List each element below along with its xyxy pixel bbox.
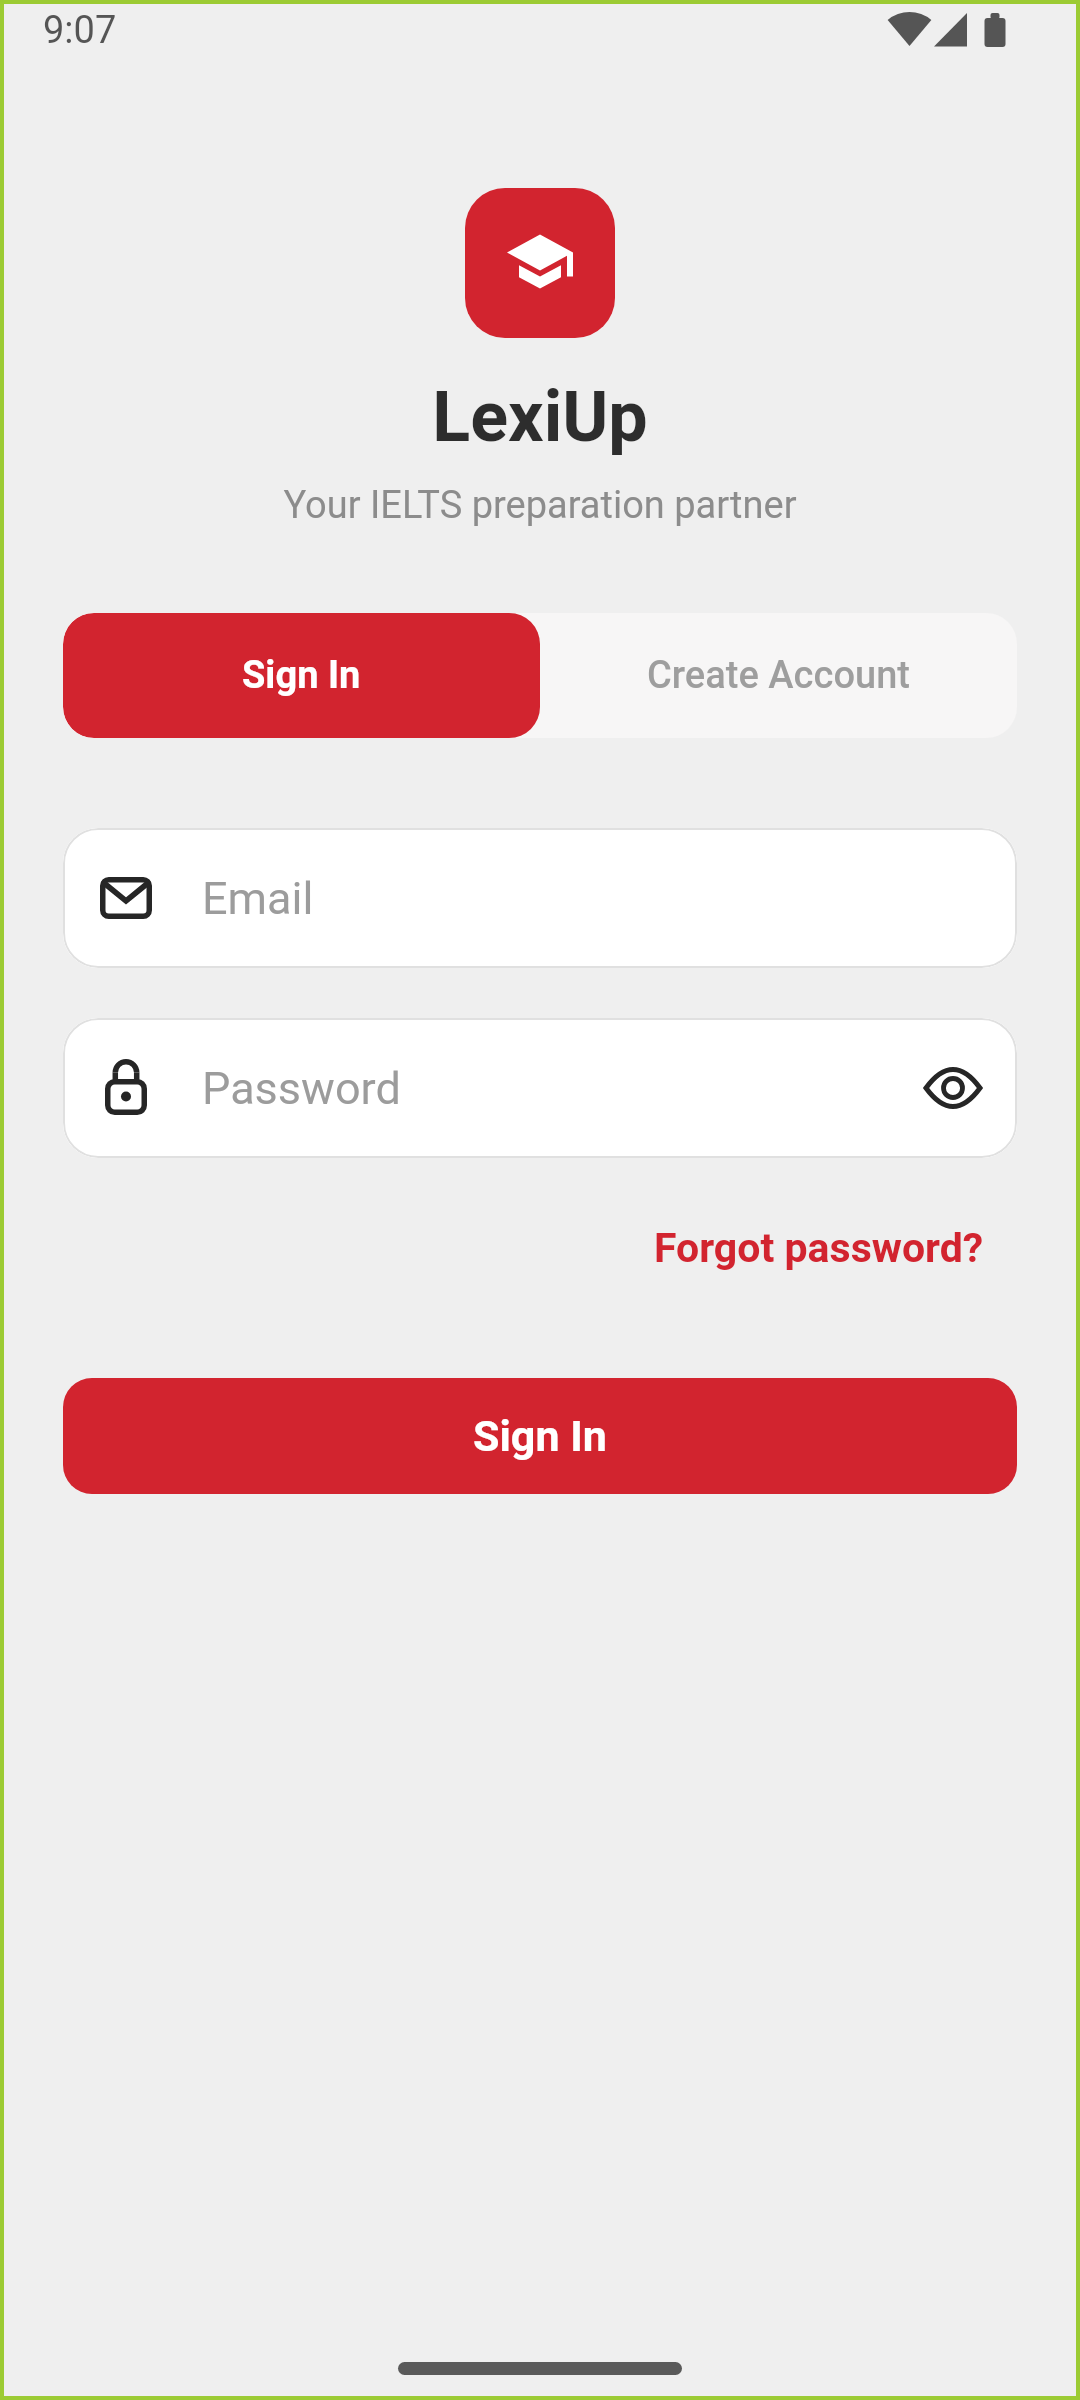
staticText: Sign In (473, 1411, 607, 1461)
staticText: Sign In (242, 653, 361, 698)
staticText: Email (202, 872, 314, 925)
button[interactable]: Email (63, 828, 1017, 968)
staticText: Your IELTS preparation partner (0, 483, 1080, 528)
button[interactable]: Forgot password? (654, 1224, 984, 1272)
staticText: 9:07 (43, 8, 117, 53)
staticText: LexiUp (0, 376, 1080, 458)
button[interactable]: Create Account (540, 613, 1017, 738)
staticText: Forgot password? (654, 1224, 984, 1272)
button[interactable]: Password (63, 1018, 1017, 1158)
button[interactable]: Sign In (63, 1378, 1017, 1494)
staticText: Create Account (647, 653, 910, 698)
staticText: Password (202, 1062, 401, 1115)
button[interactable]: Sign In (63, 613, 540, 738)
